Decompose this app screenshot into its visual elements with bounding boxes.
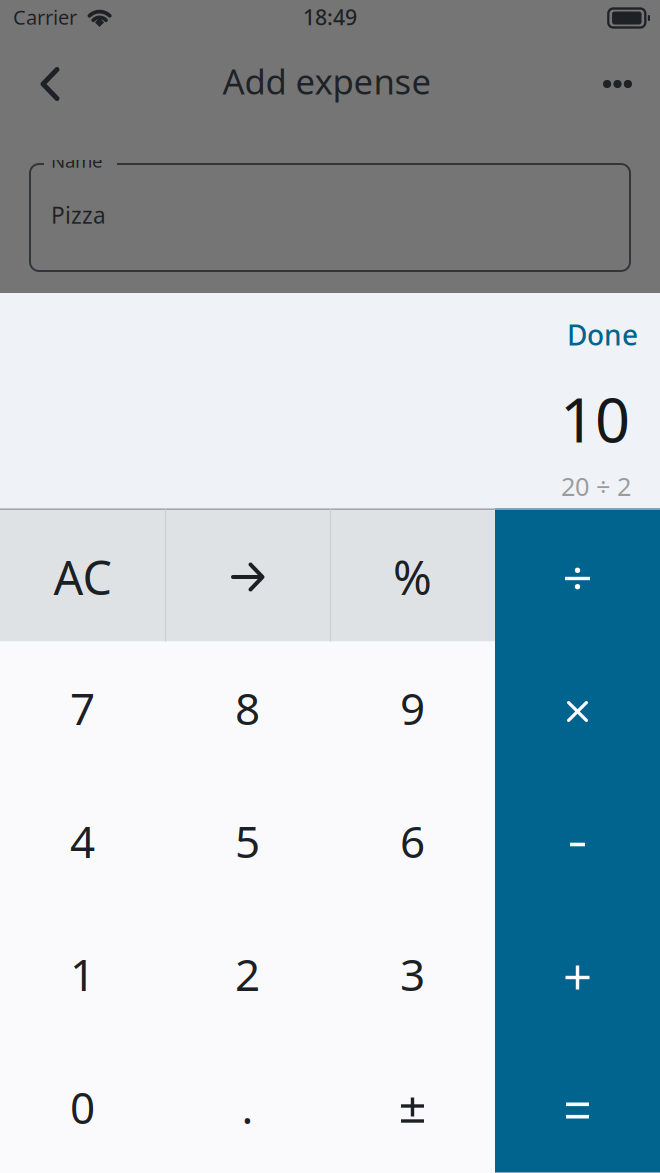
button[interactable]: 8: [165, 641, 330, 774]
staticText: 2: [235, 945, 260, 1003]
staticText: 3: [400, 945, 425, 1003]
staticText: Pizza: [51, 200, 106, 230]
button[interactable]: 3: [330, 907, 495, 1040]
staticText: 6: [400, 812, 425, 870]
button[interactable]: 6: [330, 774, 495, 907]
button[interactable]: Equals: [495, 1040, 660, 1173]
staticText: 10: [560, 378, 630, 459]
button[interactable]: Plus: [495, 907, 660, 1040]
button[interactable]: Back: [22, 48, 78, 120]
button[interactable]: Minus: [495, 774, 660, 907]
staticText: 0: [70, 1078, 95, 1136]
button[interactable]: More options: [576, 48, 632, 120]
button[interactable]: Name: [29, 163, 631, 272]
button[interactable]: Done: [567, 313, 638, 356]
staticText: 7: [70, 679, 95, 737]
staticText: %: [393, 546, 432, 608]
staticText: Carrier: [13, 4, 77, 30]
staticText: .: [241, 1078, 253, 1136]
button[interactable]: 2: [165, 907, 330, 1040]
button[interactable]: Backspace: [165, 508, 330, 641]
button[interactable]: 4: [0, 774, 165, 907]
staticText: 20 ÷ 2: [561, 469, 631, 503]
button[interactable]: .: [165, 1040, 330, 1173]
staticText: Name: [51, 148, 103, 173]
button[interactable]: AC: [0, 508, 165, 641]
button[interactable]: Multiply: [495, 641, 660, 774]
button[interactable]: 0: [0, 1040, 165, 1173]
button[interactable]: 5: [165, 774, 330, 907]
button[interactable]: 1: [0, 907, 165, 1040]
button[interactable]: 9: [330, 641, 495, 774]
staticText: Add expense: [222, 58, 431, 104]
staticText: 18:49: [303, 3, 357, 31]
staticText: 9: [400, 679, 425, 737]
button[interactable]: Divide: [495, 508, 660, 641]
button[interactable]: Toggle sign: [330, 1040, 495, 1173]
staticText: 5: [235, 812, 260, 870]
staticText: 8: [235, 679, 260, 737]
staticText: 4: [70, 812, 95, 870]
staticText: AC: [53, 546, 111, 608]
staticText: Done: [567, 316, 638, 353]
button[interactable]: 7: [0, 641, 165, 774]
staticText: 1: [70, 945, 95, 1003]
button[interactable]: %: [330, 508, 495, 641]
